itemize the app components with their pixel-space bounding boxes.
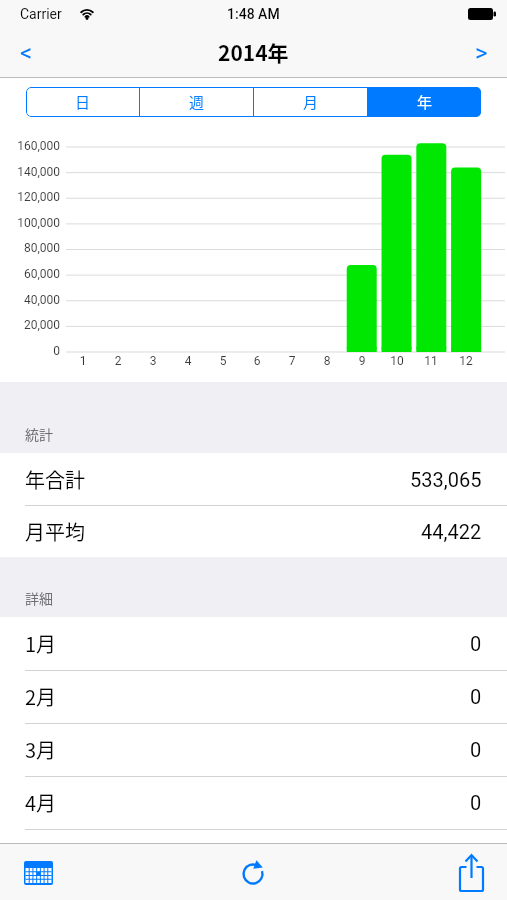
staticText: 60,000 xyxy=(0,267,60,281)
staticText: 1:48 AM xyxy=(227,6,280,22)
staticText: < xyxy=(20,39,33,67)
staticText: > xyxy=(475,39,488,67)
staticText: 週 xyxy=(189,91,205,113)
staticText: 120,000 xyxy=(0,190,60,204)
button[interactable]: 年合計 xyxy=(0,453,507,505)
staticText: 0 xyxy=(470,738,482,761)
staticText: 4 xyxy=(173,354,203,368)
staticText: 0 xyxy=(470,632,482,655)
staticText: 0 xyxy=(0,344,60,358)
staticText: 100,000 xyxy=(0,216,60,230)
staticText: 統計 xyxy=(25,424,53,444)
button[interactable] xyxy=(230,851,278,895)
button[interactable] xyxy=(14,851,62,895)
button[interactable]: 月 xyxy=(254,87,367,117)
button[interactable]: 4月 xyxy=(0,776,507,828)
staticText: 40,000 xyxy=(0,293,60,307)
staticText: 0 xyxy=(470,685,482,708)
button[interactable]: 月平均 xyxy=(0,505,507,557)
staticText: 2 xyxy=(103,354,133,368)
staticText: 140,000 xyxy=(0,165,60,179)
staticText: 月 xyxy=(303,91,319,113)
staticText: 3月 xyxy=(25,735,57,764)
staticText: 5 xyxy=(208,354,238,368)
staticText: 80,000 xyxy=(0,241,60,255)
button[interactable]: < xyxy=(8,36,44,70)
staticText: 1月 xyxy=(25,629,57,658)
staticText: 11 xyxy=(416,354,446,368)
staticText: 7 xyxy=(277,354,307,368)
staticText: 533,065 xyxy=(410,468,482,491)
button[interactable] xyxy=(445,847,497,895)
button[interactable]: 年 xyxy=(368,87,481,117)
staticText: 12 xyxy=(451,354,481,368)
staticText: 6 xyxy=(242,354,272,368)
staticText: 3 xyxy=(138,354,168,368)
button[interactable]: 週 xyxy=(140,87,253,117)
staticText: Carrier xyxy=(20,6,62,22)
staticText: 1 xyxy=(68,354,98,368)
staticText: 160,000 xyxy=(0,139,60,153)
staticText: 0 xyxy=(470,791,482,814)
staticText: 年合計 xyxy=(25,465,85,494)
staticText: 20,000 xyxy=(0,318,60,332)
button[interactable]: 2月 xyxy=(0,670,507,722)
staticText: 44,422 xyxy=(421,520,482,543)
button[interactable]: 1月 xyxy=(0,617,507,669)
staticText: 2014年 xyxy=(218,37,289,67)
button[interactable]: 3月 xyxy=(0,723,507,775)
staticText: 月平均 xyxy=(25,517,85,546)
button[interactable]: 日 xyxy=(26,87,139,117)
staticText: 詳細 xyxy=(25,588,53,608)
staticText: 8 xyxy=(312,354,342,368)
staticText: 日 xyxy=(75,91,91,113)
button[interactable]: > xyxy=(463,36,499,70)
staticText: 9 xyxy=(347,354,377,368)
staticText: 10 xyxy=(382,354,412,368)
staticText: 2月 xyxy=(25,682,57,711)
staticText: 年 xyxy=(417,91,433,113)
staticText: 4月 xyxy=(25,788,57,817)
